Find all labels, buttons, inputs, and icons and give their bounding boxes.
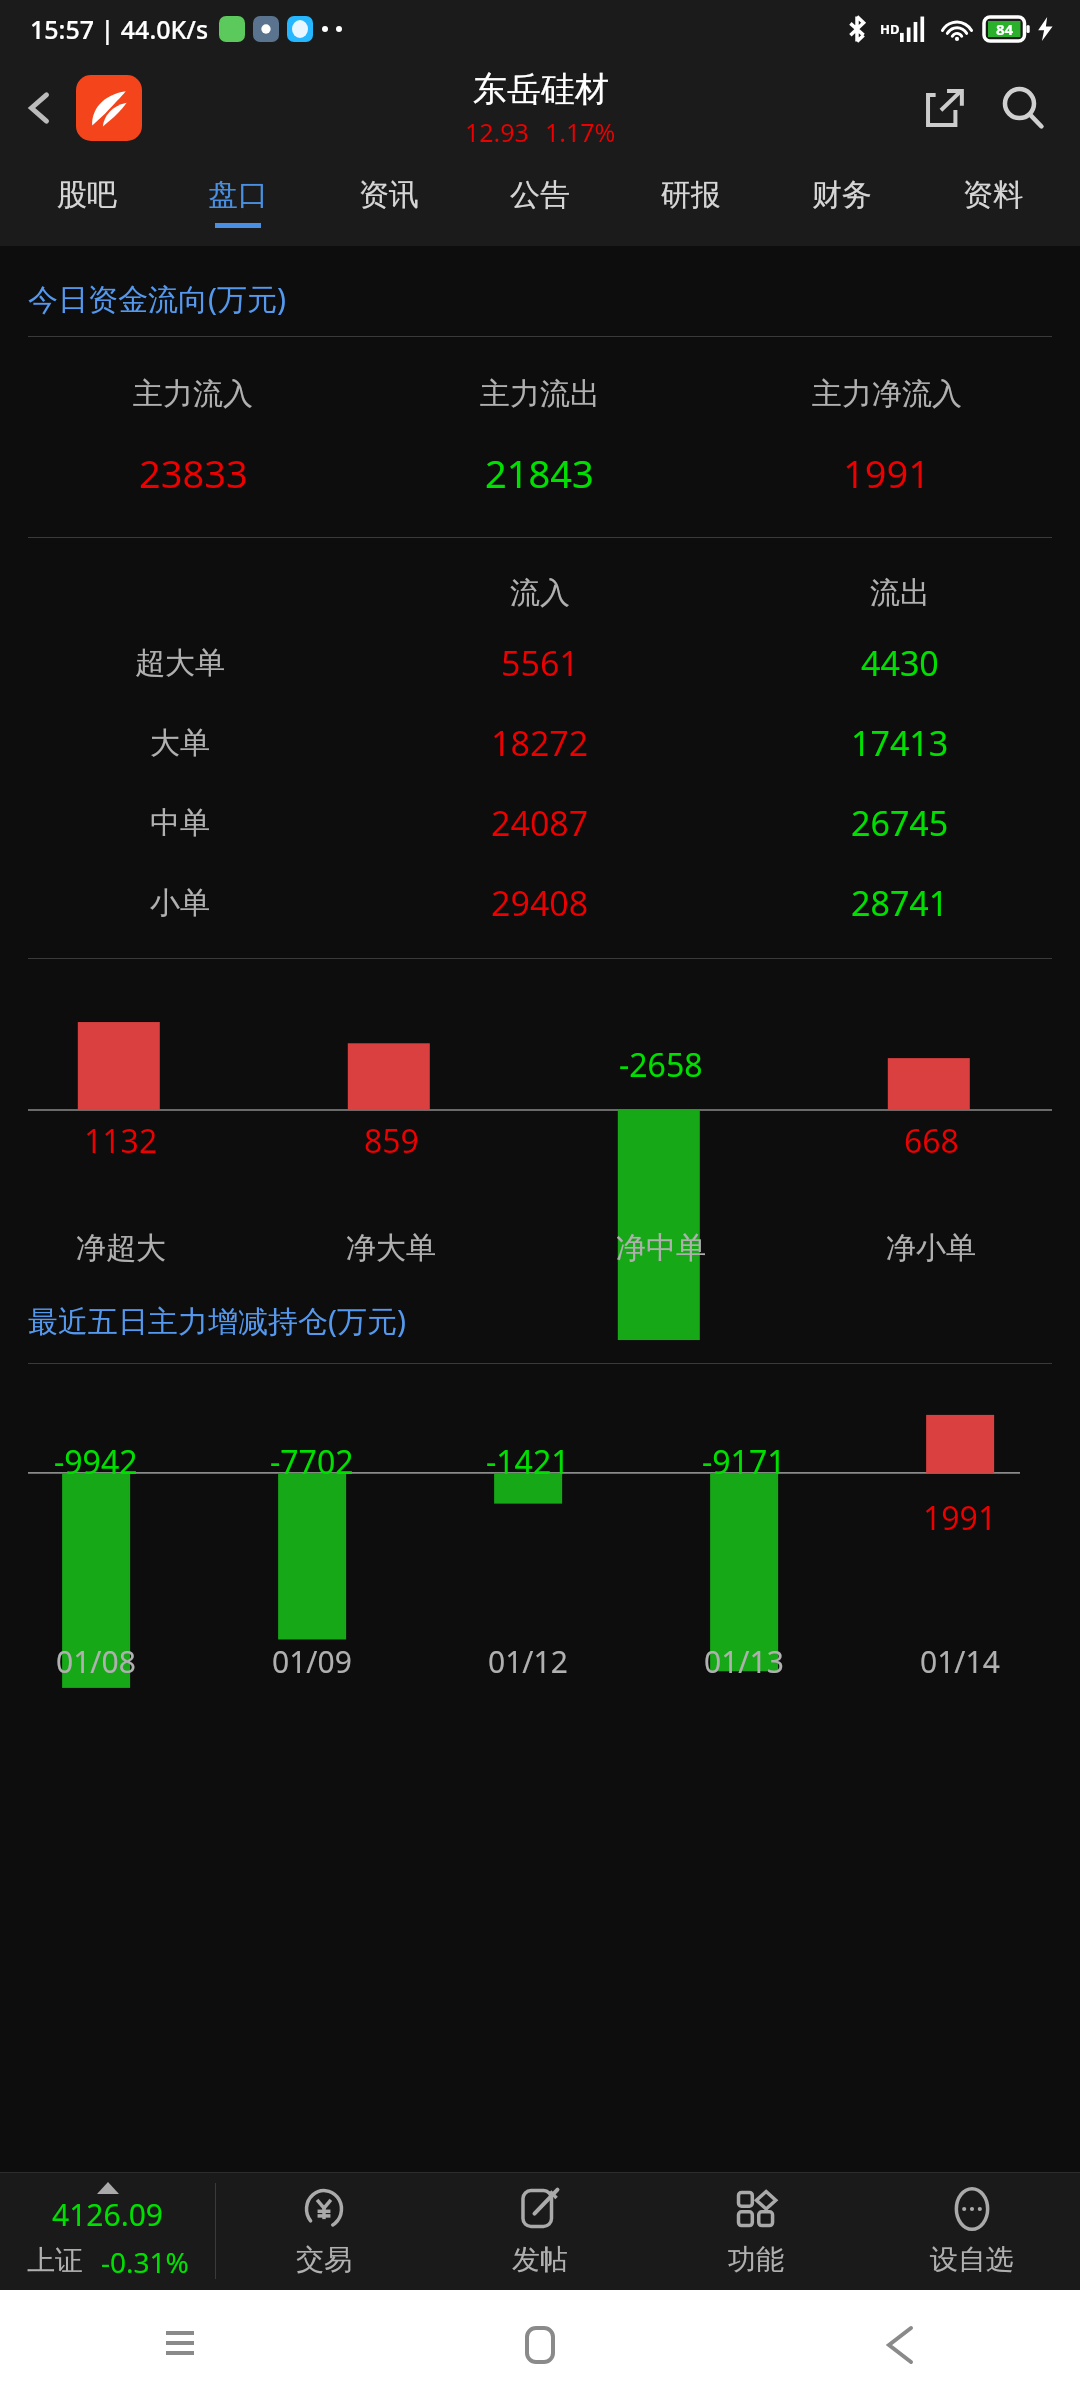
- staticText: 01/14: [920, 1641, 1000, 1682]
- staticText: 84: [996, 19, 1014, 39]
- staticText: 主力净流入: [812, 375, 962, 413]
- staticText: 盘口: [208, 176, 268, 214]
- staticText: 1132: [84, 1119, 158, 1163]
- button[interactable]: 设自选: [864, 2172, 1080, 2290]
- staticText: 21843: [485, 447, 594, 499]
- staticText: 1991: [923, 1496, 997, 1540]
- staticText: -9171: [702, 1440, 786, 1484]
- button[interactable]: Recents: [150, 2315, 210, 2375]
- staticText: 小单: [150, 884, 210, 922]
- staticText: 01/09: [272, 1641, 352, 1682]
- staticText: 公告: [510, 176, 570, 214]
- button[interactable]: 盘口: [162, 158, 313, 246]
- staticText: 上证: [27, 2243, 83, 2278]
- staticText: 4430: [861, 640, 939, 686]
- staticText: 26745: [851, 800, 949, 846]
- staticText: 研报: [661, 176, 721, 214]
- staticText: HD: [880, 20, 900, 38]
- staticText: 01/08: [56, 1641, 136, 1682]
- button[interactable]: 资讯: [313, 158, 464, 246]
- button[interactable]: 功能: [648, 2172, 864, 2290]
- staticText: -9942: [54, 1440, 138, 1484]
- button[interactable]: Search: [994, 79, 1052, 137]
- button[interactable]: 4126.09: [0, 2172, 215, 2290]
- staticText: 净大单: [346, 1229, 436, 1267]
- button[interactable]: 研报: [615, 158, 766, 246]
- staticText: 29408: [491, 880, 589, 926]
- staticText: 功能: [728, 2242, 784, 2277]
- staticText: 净中单: [616, 1229, 706, 1267]
- staticText: 17413: [851, 720, 949, 766]
- staticText: 1.17%: [545, 115, 616, 149]
- staticText: 12.93: [465, 115, 529, 149]
- staticText: 股吧: [57, 176, 117, 214]
- staticText: 净超大: [76, 1229, 166, 1267]
- button[interactable]: Share: [916, 80, 972, 136]
- staticText: 18272: [491, 720, 589, 766]
- staticText: 1991: [843, 447, 930, 499]
- button[interactable]: 资料: [917, 158, 1068, 246]
- staticText: 大单: [150, 724, 210, 762]
- staticText: 01/12: [488, 1641, 568, 1682]
- staticText: -2658: [619, 1043, 703, 1087]
- staticText: 4126.09: [52, 2194, 163, 2235]
- staticText: -1421: [486, 1440, 570, 1484]
- staticText: -0.31%: [101, 2243, 189, 2281]
- staticText: 15:57 | 44.0K/s: [30, 12, 209, 46]
- staticText: 流出: [870, 574, 930, 612]
- staticText: 发帖: [512, 2242, 568, 2277]
- button[interactable]: 股吧: [12, 158, 162, 246]
- button[interactable]: Back: [22, 86, 56, 130]
- staticText: 5561: [501, 640, 579, 686]
- staticText: 24087: [491, 800, 589, 846]
- staticText: 主力流出: [480, 375, 600, 413]
- staticText: 资讯: [359, 176, 419, 214]
- staticText: 23833: [139, 447, 248, 499]
- staticText: 净小单: [886, 1229, 976, 1267]
- staticText: 28741: [851, 880, 949, 926]
- staticText: 今日资金流向(万元): [28, 278, 286, 319]
- staticText: 超大单: [135, 644, 225, 682]
- staticText: 设自选: [930, 2242, 1014, 2277]
- staticText: 最近五日主力增减持仓(万元): [28, 1300, 406, 1341]
- staticText: 668: [904, 1119, 959, 1163]
- staticText: 交易: [296, 2242, 352, 2277]
- button[interactable]: 公告: [464, 158, 615, 246]
- staticText: -7702: [270, 1440, 354, 1484]
- staticText: 资料: [963, 176, 1023, 214]
- staticText: 主力流入: [133, 375, 253, 413]
- staticText: 中单: [150, 804, 210, 842]
- button[interactable]: Home: [510, 2315, 570, 2375]
- staticText: 流入: [510, 574, 570, 612]
- button[interactable]: 交易: [216, 2172, 432, 2290]
- button[interactable]: Back: [870, 2315, 930, 2375]
- button[interactable]: 财务: [766, 158, 917, 246]
- button[interactable]: 发帖: [432, 2172, 648, 2290]
- button[interactable]: App logo: [76, 75, 142, 141]
- staticText: 东岳硅材: [473, 68, 609, 111]
- staticText: 01/13: [704, 1641, 784, 1682]
- staticText: 财务: [812, 176, 872, 214]
- staticText: 859: [364, 1119, 419, 1163]
